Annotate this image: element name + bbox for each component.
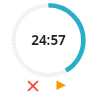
- button[interactable]: Start timer: [51, 75, 71, 95]
- button[interactable]: Cancel timer: [23, 76, 43, 96]
- staticText: 24:57: [31, 31, 66, 49]
